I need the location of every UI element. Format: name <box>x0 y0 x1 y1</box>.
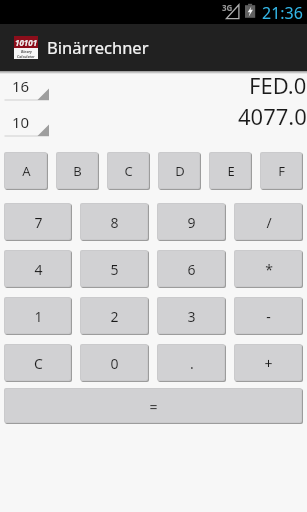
button[interactable]: = <box>4 388 303 424</box>
staticText: 0 <box>110 354 119 373</box>
staticText: 8 <box>110 213 119 232</box>
staticText: 3G <box>222 2 233 13</box>
staticText: Calculator <box>17 54 35 59</box>
staticText: 5 <box>110 260 119 279</box>
button[interactable]: 2 <box>80 297 149 335</box>
button[interactable]: C <box>4 344 72 382</box>
button[interactable]: App icon <box>14 36 38 59</box>
staticText: C <box>124 162 133 180</box>
staticText: FED.0 <box>249 70 307 100</box>
button[interactable]: 3 <box>157 297 226 335</box>
staticText: 2 <box>110 307 119 326</box>
staticText: - <box>266 307 271 326</box>
staticText: 7 <box>34 213 43 232</box>
button[interactable]: B <box>56 152 99 190</box>
other: Signal strength <box>226 4 240 20</box>
button[interactable]: * <box>234 250 303 288</box>
staticText: + <box>264 354 273 373</box>
staticText: 10101 <box>15 37 38 48</box>
staticText: 4077.0 <box>238 101 307 131</box>
button[interactable]: 7 <box>4 203 72 241</box>
staticText: F <box>278 162 285 180</box>
button[interactable]: . <box>157 344 226 382</box>
staticText: Binärrechner <box>47 36 149 58</box>
staticText: A <box>22 162 31 180</box>
staticText: 9 <box>187 213 196 232</box>
staticText: Binary <box>21 49 32 54</box>
staticText: 1 <box>34 307 43 326</box>
button[interactable]: 9 <box>157 203 226 241</box>
staticText: . <box>190 354 194 373</box>
staticText: C <box>34 354 43 373</box>
button[interactable]: D <box>158 152 201 190</box>
button[interactable]: - <box>234 297 303 335</box>
button[interactable]: 4 <box>4 250 72 288</box>
button[interactable]: 10 <box>4 107 49 137</box>
button[interactable]: A <box>4 152 48 190</box>
button[interactable]: 1 <box>4 297 72 335</box>
button[interactable]: 5 <box>80 250 149 288</box>
button[interactable]: + <box>234 344 303 382</box>
staticText: 10 <box>12 112 30 132</box>
button[interactable]: 8 <box>80 203 149 241</box>
staticText: = <box>149 397 158 416</box>
button[interactable]: 0 <box>80 344 149 382</box>
staticText: * <box>265 260 273 279</box>
button[interactable]: / <box>234 203 303 241</box>
staticText: 6 <box>187 260 196 279</box>
staticText: 16 <box>12 76 30 96</box>
staticText: 21:36 <box>262 2 303 24</box>
staticText: / <box>266 213 272 232</box>
staticText: 3 <box>187 307 196 326</box>
button[interactable]: C <box>107 152 150 190</box>
button[interactable]: F <box>260 152 303 190</box>
staticText: 4 <box>34 260 43 279</box>
other: Battery charging <box>245 3 256 19</box>
button[interactable]: 6 <box>157 250 226 288</box>
staticText: E <box>227 162 235 180</box>
button[interactable]: 16 <box>4 71 49 101</box>
staticText: D <box>175 162 185 180</box>
button[interactable]: E <box>209 152 252 190</box>
staticText: B <box>73 162 82 180</box>
